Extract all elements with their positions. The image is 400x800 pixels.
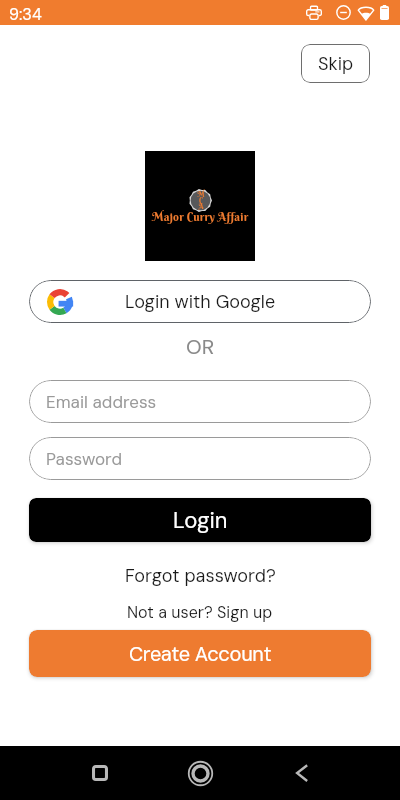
- button[interactable]: Back: [287, 759, 315, 787]
- button[interactable]: Create Account: [29, 630, 371, 677]
- button[interactable]: Password: [29, 437, 371, 480]
- button[interactable]: Not a user? Sign up: [117, 596, 283, 629]
- staticText: 9:34: [9, 4, 42, 25]
- staticText: Not a user? Sign up: [127, 602, 273, 623]
- button[interactable]: Skip: [301, 44, 370, 83]
- button[interactable]: Recent apps: [86, 759, 114, 787]
- staticText: Login: [173, 506, 228, 535]
- staticText: OR: [186, 333, 215, 360]
- staticText: Email address: [46, 391, 157, 413]
- button[interactable]: Login: [29, 498, 371, 542]
- staticText: Create Account: [129, 641, 272, 667]
- button[interactable]: Home: [184, 757, 216, 789]
- staticText: Major Curry Affair: [152, 210, 249, 224]
- staticText: Password: [46, 448, 122, 470]
- button[interactable]: Email address: [29, 380, 371, 423]
- staticText: M C A: [197, 190, 205, 211]
- button[interactable]: Forgot password?: [115, 558, 286, 593]
- staticText: Login with Google: [125, 290, 276, 313]
- staticText: Skip: [318, 52, 354, 75]
- button[interactable]: Login with Google: [29, 280, 371, 323]
- staticText: Forgot password?: [125, 564, 276, 587]
